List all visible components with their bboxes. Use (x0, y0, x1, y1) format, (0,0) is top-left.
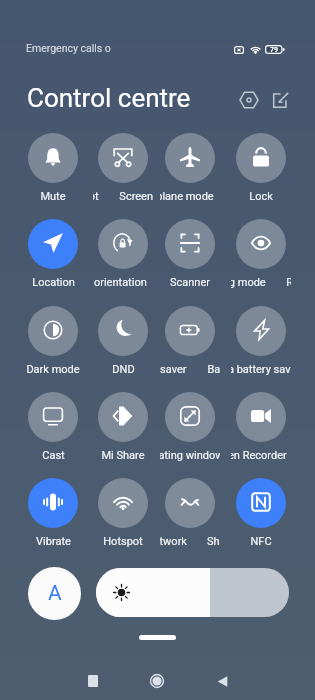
button[interactable]: Aeroplane mode (160, 133, 220, 209)
button[interactable]: Edit (265, 85, 295, 115)
button[interactable]: Recents (81, 669, 105, 693)
button[interactable]: DND (93, 306, 153, 382)
staticText: Share Network (207, 535, 220, 548)
button[interactable]: Auto brightness (28, 567, 81, 620)
button[interactable]: Lock (231, 133, 291, 209)
button[interactable]: Settings (234, 85, 264, 115)
button[interactable]: Mute (23, 133, 83, 209)
button[interactable]: Home (145, 669, 169, 693)
button[interactable]: Hotspot (93, 478, 153, 554)
staticText: Emergency calls o (26, 42, 111, 54)
staticText: Screenshot (119, 190, 153, 203)
staticText: Aeroplane mode (160, 190, 214, 203)
staticText: Lock (249, 190, 273, 203)
button[interactable]: Mi Share (93, 392, 153, 468)
button[interactable]: Screen Recorder (231, 392, 291, 468)
staticText: 79 (270, 46, 278, 54)
staticText: Mute (40, 190, 66, 203)
button[interactable]: Dark mode (23, 306, 83, 382)
staticText: Auto orientation (93, 276, 147, 289)
staticText: Ultra battery saver (231, 363, 291, 376)
staticText: A (48, 581, 62, 606)
button[interactable]: Battery saver (160, 306, 220, 382)
staticText: DND (112, 363, 135, 376)
staticText: Control centre (27, 83, 191, 113)
button[interactable]: Vibrate (23, 478, 83, 554)
staticText: Scanner (170, 276, 210, 289)
staticText: Location (32, 276, 75, 289)
button[interactable]: NFC (231, 478, 291, 554)
staticText: Battery saver (160, 363, 187, 376)
staticText: Hotspot (103, 535, 143, 548)
button[interactable]: Cast (23, 392, 83, 468)
staticText: NFC (250, 535, 272, 548)
staticText: Screenshot (93, 190, 99, 203)
staticText: Cast (42, 449, 65, 462)
button[interactable]: Location (23, 219, 83, 295)
button[interactable]: Brightness (96, 568, 289, 617)
staticText: Screen Recorder (231, 449, 287, 462)
button[interactable]: Floating window (160, 392, 220, 468)
staticText: Dark mode (26, 363, 80, 376)
staticText: Floating window (160, 449, 220, 462)
button[interactable]: Reading mode (231, 219, 291, 295)
staticText: Share Network (160, 535, 187, 548)
staticText: Mi Share (101, 449, 145, 462)
button[interactable]: Scanner (160, 219, 220, 295)
button[interactable]: Screenshot (93, 133, 153, 209)
staticText: Reading mode (231, 276, 266, 289)
staticText: Battery saver (207, 363, 220, 376)
staticText: Vibrate (36, 535, 71, 548)
button[interactable]: Back (210, 669, 234, 693)
button[interactable]: Ultra battery saver (231, 306, 291, 382)
button[interactable]: Share Network (160, 478, 220, 554)
button[interactable]: Auto orientation (93, 219, 153, 295)
staticText: Reading mode (286, 276, 291, 289)
